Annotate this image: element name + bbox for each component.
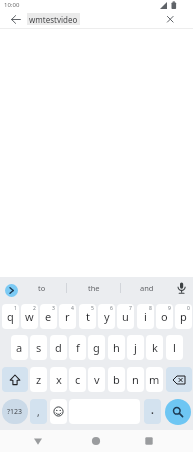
- staticText: 6: [110, 305, 113, 312]
- staticText: a: [16, 340, 23, 355]
- staticText: 10:00: [4, 1, 20, 9]
- button[interactable]: a: [11, 335, 28, 360]
- staticText: i: [144, 309, 147, 324]
- staticText: v: [94, 372, 100, 387]
- staticText: 5: [91, 305, 94, 312]
- button[interactable]: m: [146, 367, 163, 392]
- button[interactable]: h: [108, 335, 125, 360]
- staticText: f: [76, 340, 80, 355]
- staticText: wmtestvideo: [29, 14, 78, 25]
- staticText: u: [122, 309, 129, 324]
- button[interactable]: [26, 430, 50, 452]
- staticText: 7: [129, 305, 132, 312]
- staticText: n: [132, 372, 139, 387]
- button[interactable]: o: [156, 304, 173, 329]
- button[interactable]: [137, 430, 161, 452]
- staticText: s: [36, 340, 42, 355]
- staticText: z: [36, 372, 42, 387]
- staticText: c: [75, 372, 81, 387]
- staticText: p: [180, 309, 187, 324]
- staticText: l: [173, 340, 176, 355]
- button[interactable]: [165, 399, 191, 425]
- button[interactable]: z: [30, 367, 47, 392]
- staticText: q: [7, 309, 14, 324]
- staticText: .: [151, 403, 154, 417]
- staticText: 0: [187, 305, 190, 312]
- button[interactable]: [5, 284, 18, 297]
- button[interactable]: ,: [30, 399, 47, 424]
- button[interactable]: the: [74, 277, 114, 299]
- button[interactable]: [2, 367, 28, 392]
- button[interactable]: b: [108, 367, 125, 392]
- button[interactable]: [84, 430, 108, 452]
- staticText: 1: [14, 305, 17, 312]
- button[interactable]: t: [79, 304, 96, 329]
- staticText: ,: [37, 405, 40, 419]
- button[interactable]: x: [50, 367, 67, 392]
- staticText: 8: [149, 305, 152, 312]
- staticText: 9: [168, 305, 171, 312]
- staticText: j: [134, 340, 137, 355]
- staticText: b: [113, 372, 120, 387]
- staticText: x: [56, 372, 62, 387]
- staticText: m: [149, 372, 160, 387]
- button[interactable]: f: [69, 335, 86, 360]
- button[interactable]: and: [127, 277, 167, 299]
- button[interactable]: [6, 10, 26, 28]
- staticText: the: [88, 283, 100, 293]
- staticText: 4: [71, 305, 74, 312]
- staticText: e: [45, 309, 52, 324]
- staticText: 3: [52, 305, 55, 312]
- staticText: h: [113, 340, 120, 355]
- staticText: to: [38, 283, 46, 293]
- button[interactable]: [172, 277, 190, 299]
- button[interactable]: j: [127, 335, 144, 360]
- button[interactable]: u: [117, 304, 134, 329]
- staticText: g: [93, 340, 100, 355]
- button[interactable]: i: [137, 304, 154, 329]
- staticText: r: [65, 309, 70, 324]
- button[interactable]: ?123: [2, 399, 28, 424]
- button[interactable]: p: [175, 304, 192, 329]
- staticText: w: [25, 309, 34, 324]
- staticText: 2: [33, 305, 36, 312]
- button[interactable]: n: [127, 367, 144, 392]
- button[interactable]: d: [50, 335, 67, 360]
- button[interactable]: v: [88, 367, 105, 392]
- button[interactable]: [50, 399, 67, 424]
- button[interactable]: .: [144, 399, 161, 424]
- staticText: k: [152, 340, 158, 355]
- button[interactable]: [160, 10, 180, 28]
- button[interactable]: c: [69, 367, 86, 392]
- staticText: t: [86, 309, 90, 324]
- button[interactable]: [166, 367, 192, 392]
- staticText: ?123: [7, 407, 23, 417]
- staticText: y: [104, 309, 110, 324]
- button[interactable]: to: [22, 277, 62, 299]
- button[interactable]: w: [21, 304, 38, 329]
- button[interactable]: r: [59, 304, 76, 329]
- button[interactable]: l: [166, 335, 183, 360]
- button[interactable]: g: [88, 335, 105, 360]
- button[interactable]: k: [146, 335, 163, 360]
- staticText: d: [55, 340, 62, 355]
- button[interactable]: e: [40, 304, 57, 329]
- button[interactable]: s: [30, 335, 47, 360]
- button[interactable]: y: [98, 304, 115, 329]
- button[interactable]: q: [2, 304, 19, 329]
- staticText: and: [140, 283, 154, 293]
- staticText: o: [161, 309, 168, 324]
